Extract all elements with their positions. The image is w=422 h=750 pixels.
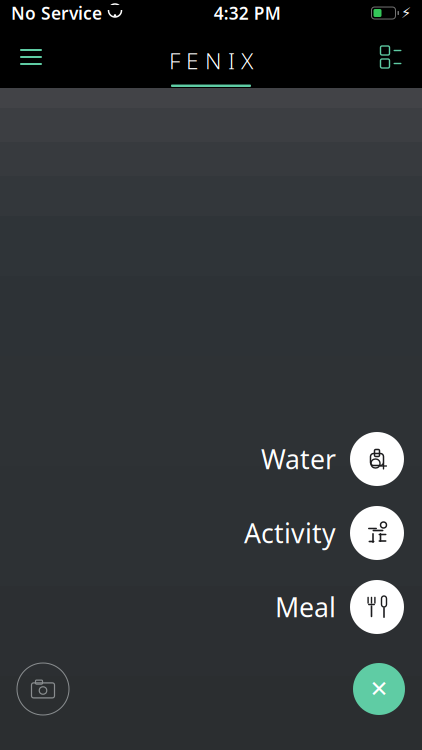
button[interactable]: Menu	[8, 26, 54, 88]
staticText: 4:32 PM	[214, 1, 281, 24]
button[interactable]: Camera	[17, 663, 69, 715]
button[interactable]: Close	[353, 663, 405, 715]
staticText: F E N I X	[169, 45, 253, 75]
staticText: Water	[261, 441, 336, 477]
staticText: ⚡︎	[401, 5, 411, 21]
button[interactable]: Water	[0, 432, 404, 486]
button[interactable]: Meal	[0, 580, 404, 634]
button[interactable]: List view	[368, 26, 414, 88]
staticText: Activity	[244, 515, 336, 551]
button[interactable]: Activity	[0, 506, 404, 560]
staticText: Meal	[275, 589, 336, 625]
staticText: ✕	[369, 676, 388, 702]
staticText: No Service	[11, 1, 102, 24]
